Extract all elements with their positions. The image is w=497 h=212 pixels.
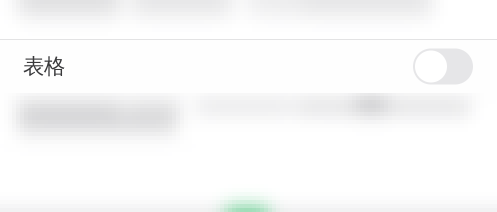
button[interactable]: 表格 [0,40,497,93]
staticText: 表格 [23,53,65,80]
